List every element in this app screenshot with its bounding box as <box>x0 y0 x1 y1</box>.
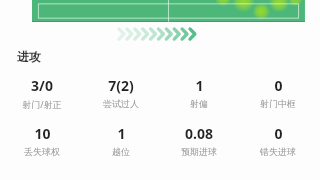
staticText: 越位 <box>112 146 130 157</box>
staticText: 0 <box>274 124 283 143</box>
staticText: 尝试过人 <box>103 98 139 109</box>
staticText: 3/0 <box>31 76 53 95</box>
button[interactable]: Pitch heat map <box>0 0 320 22</box>
staticText: 射门/射正 <box>22 98 62 110</box>
staticText: 7(2) <box>108 76 134 95</box>
staticText: 射偏 <box>190 98 208 109</box>
button[interactable]: 0 <box>260 124 296 157</box>
button[interactable]: 1 <box>190 76 208 109</box>
button[interactable]: 0 <box>260 76 296 109</box>
button[interactable]: 1 <box>112 124 130 157</box>
staticText: 10 <box>34 124 51 143</box>
button[interactable]: 进攻 <box>17 49 41 64</box>
staticText: 1 <box>117 124 126 143</box>
staticText: 射门中框 <box>260 98 296 109</box>
staticText: 错失进球 <box>260 146 296 157</box>
staticText: 丢失球权 <box>24 146 60 157</box>
button[interactable]: 10 <box>24 124 60 157</box>
staticText: 0 <box>274 76 283 95</box>
button[interactable]: 3/0 <box>22 76 62 110</box>
button[interactable]: Attacking direction <box>0 26 320 42</box>
staticText: 0.08 <box>185 124 213 143</box>
button[interactable]: 0.08 <box>181 124 217 157</box>
button[interactable]: 7(2) <box>103 76 139 109</box>
staticText: 1 <box>195 76 204 95</box>
staticText: 预期进球 <box>181 146 217 157</box>
